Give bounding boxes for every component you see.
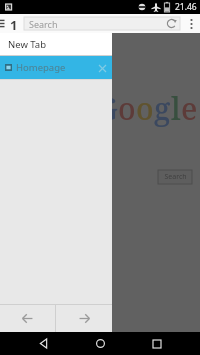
- button[interactable]: Menu: [0, 14, 7, 33]
- button[interactable]: Recent apps: [143, 332, 171, 355]
- staticText: o: [118, 88, 136, 129]
- button[interactable]: Tabs: [8, 16, 20, 32]
- button[interactable]: Homepage: [0, 56, 112, 79]
- staticText: G: [96, 88, 118, 129]
- staticText: g: [154, 88, 171, 129]
- button[interactable]: Back: [29, 332, 57, 355]
- staticText: New Tab: [8, 38, 47, 51]
- button[interactable]: More options: [182, 14, 200, 33]
- staticText: Homepage: [16, 61, 96, 74]
- staticText: e: [181, 88, 198, 129]
- button[interactable]: Search: [158, 170, 192, 184]
- button[interactable]: Back: [0, 305, 55, 332]
- button[interactable]: Search: [24, 17, 180, 30]
- staticText: 1: [10, 16, 18, 32]
- button[interactable]: Close tab: [96, 62, 108, 74]
- staticText: 21.46: [175, 1, 197, 13]
- staticText: o: [136, 88, 154, 129]
- button[interactable]: New Tab: [0, 33, 112, 55]
- staticText: Search: [29, 18, 58, 30]
- button[interactable]: Reload: [165, 17, 178, 30]
- staticText: Search: [164, 172, 187, 182]
- button[interactable]: Home: [86, 332, 114, 355]
- button[interactable]: Forward: [56, 305, 112, 332]
- staticText: l: [171, 88, 181, 129]
